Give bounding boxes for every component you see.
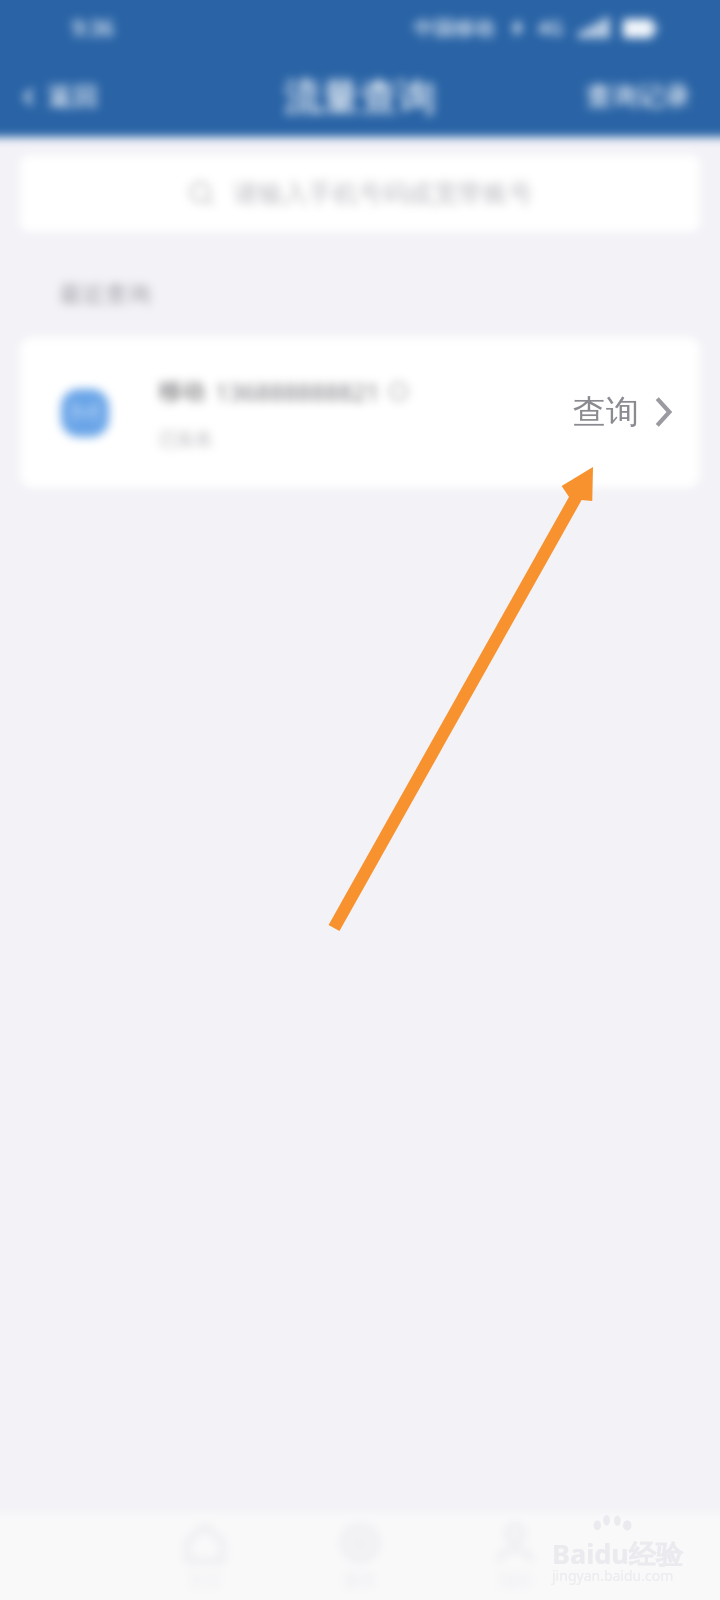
staticText: 移动 bbox=[159, 377, 205, 406]
staticText: 9:36 bbox=[72, 14, 114, 43]
staticText: Baidu经验 bbox=[552, 1535, 683, 1572]
staticText: 4G bbox=[538, 15, 563, 41]
staticText: 流量查询 bbox=[284, 73, 436, 121]
staticText: 查询记录 bbox=[586, 80, 690, 113]
staticText: 查询 bbox=[573, 391, 639, 433]
button[interactable]: 查询记录 bbox=[570, 56, 720, 137]
staticText: 已实名 bbox=[159, 428, 213, 451]
staticText: 最近查询 bbox=[59, 280, 151, 309]
button[interactable]: 查询 bbox=[540, 337, 700, 488]
staticText: 返回 bbox=[48, 81, 98, 112]
staticText: 中国移动 bbox=[414, 16, 494, 41]
button[interactable]: 查询 bbox=[492, 346, 688, 477]
staticText: 查询 bbox=[558, 392, 624, 434]
button[interactable]: 请输入手机号码或宽带账号 bbox=[20, 155, 700, 232]
staticText: 请输入手机号码或宽带账号 bbox=[233, 178, 533, 209]
button[interactable]: Back bbox=[0, 56, 116, 137]
staticText: jingyan.baidu.com bbox=[552, 1566, 674, 1585]
staticText: 136888888821 bbox=[215, 375, 380, 408]
button[interactable]: 移动 bbox=[20, 337, 700, 488]
